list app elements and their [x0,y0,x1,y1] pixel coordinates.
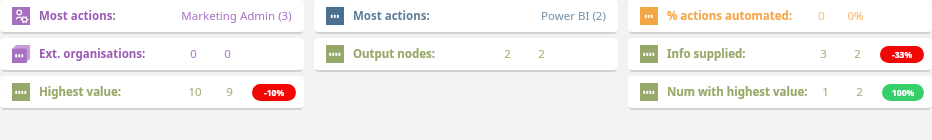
staticText: 100% [892,87,915,99]
staticText: 10 [188,84,202,100]
staticText: 2 [538,46,545,62]
button[interactable]: Num with highest value: [628,76,932,108]
staticText: Num with highest value: [667,84,808,100]
staticText: % actions automated: [667,8,793,24]
other: Highest value: [12,83,30,101]
other: Most actions: [326,7,344,25]
staticText: Most actions: [39,8,116,24]
other: Most actions: [12,7,30,25]
staticText: 9 [226,84,233,100]
staticText: Power BI (2) [541,8,606,24]
staticText: 2 [504,46,511,62]
staticText: 1 [822,84,829,100]
staticText: 0% [847,8,864,24]
other: Output nodes: [326,45,344,63]
other: % actions automated: [640,7,658,25]
button[interactable]: Info supplied: [628,38,932,70]
staticText: Output nodes: [353,46,436,62]
staticText: Marketing Admin (3) [181,8,292,24]
button[interactable]: Most actions: [314,0,618,32]
staticText: -10% [264,87,285,99]
button[interactable]: Highest value: [0,76,304,108]
staticText: -33% [892,49,913,61]
staticText: 0 [224,46,231,62]
button[interactable]: -33% [880,46,924,63]
staticText: 0 [818,8,825,24]
button[interactable]: Most actions: [0,0,304,32]
staticText: Info supplied: [667,46,746,62]
button[interactable]: -10% [252,84,296,101]
other: Ext. organisations: [12,45,30,63]
other: Info supplied: [640,45,658,63]
staticText: Highest value: [39,84,122,100]
staticText: 2 [856,84,863,100]
staticText: Most actions: [353,8,430,24]
button[interactable]: 100% [882,84,924,101]
other: Num with highest value: [640,83,658,101]
staticText: 0 [190,46,197,62]
staticText: 3 [820,46,827,62]
button[interactable]: Output nodes: [314,38,618,70]
button[interactable]: % actions automated: [628,0,932,32]
staticText: Ext. organisations: [39,46,146,62]
staticText: 2 [854,46,861,62]
button[interactable]: Ext. organisations: [0,38,304,70]
